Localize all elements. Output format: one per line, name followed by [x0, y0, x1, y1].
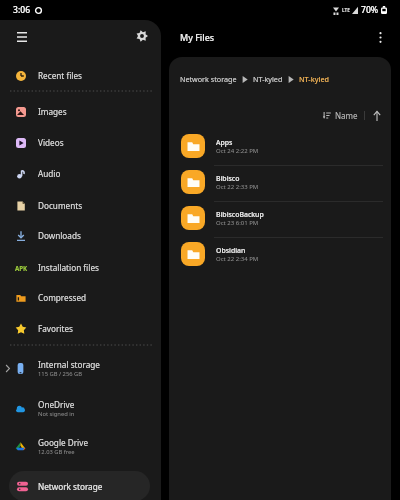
- button[interactable]: Sort ascending: [370, 109, 383, 122]
- button[interactable]: Google Drive: [0, 429, 161, 463]
- staticText: Favorites: [38, 323, 73, 334]
- staticText: 70%: [361, 4, 379, 16]
- staticText: Audio: [38, 168, 61, 179]
- staticText: Network storage: [38, 481, 103, 492]
- staticText: Videos: [38, 137, 64, 148]
- button[interactable]: NT-kyled: [253, 69, 283, 89]
- staticText: Oct 22 2:33 PM: [216, 183, 259, 191]
- staticText: Obsidian: [216, 246, 246, 255]
- button[interactable]: Apps: [169, 128, 391, 164]
- button[interactable]: APK: [0, 252, 161, 283]
- staticText: NT-kyled: [253, 74, 283, 84]
- button[interactable]: Network storage: [9, 471, 150, 500]
- staticText: Installation files: [38, 262, 99, 273]
- staticText: LTE: [342, 7, 350, 13]
- staticText: OneDrive: [38, 399, 75, 410]
- button[interactable]: OneDrive: [0, 391, 161, 425]
- button[interactable]: Bibisco: [169, 164, 391, 200]
- staticText: BibiscoBackup: [216, 210, 264, 219]
- staticText: My Files: [180, 31, 215, 43]
- staticText: Images: [38, 106, 67, 117]
- staticText: 12.03 GB free: [38, 448, 75, 456]
- staticText: 115 GB / 256 GB: [38, 370, 83, 378]
- staticText: 3:06: [13, 4, 31, 16]
- staticText: Not signed in: [38, 410, 75, 418]
- staticText: Internal storage: [38, 359, 100, 370]
- staticText: Google Drive: [38, 437, 89, 448]
- button[interactable]: Internal storage: [0, 351, 161, 385]
- staticText: Compressed: [38, 292, 87, 303]
- staticText: Apps: [216, 138, 233, 147]
- button[interactable]: Videos: [0, 127, 161, 158]
- button[interactable]: NT-kyled: [299, 69, 329, 89]
- button[interactable]: Menu: [11, 26, 33, 48]
- button[interactable]: Documents: [0, 190, 161, 221]
- button[interactable]: Images: [0, 96, 161, 127]
- button[interactable]: More options: [370, 27, 391, 48]
- staticText: APK: [15, 264, 28, 272]
- staticText: Oct 24 2:22 PM: [216, 147, 259, 155]
- button[interactable]: Downloads: [0, 220, 161, 251]
- staticText: Downloads: [38, 230, 81, 241]
- button[interactable]: Compressed: [0, 282, 161, 313]
- staticText: Oct 23 6:01 PM: [216, 219, 259, 227]
- staticText: Bibisco: [216, 174, 240, 183]
- staticText: Name: [335, 110, 358, 121]
- button[interactable]: Favorites: [0, 313, 161, 344]
- staticText: Oct 22 2:34 PM: [216, 255, 259, 263]
- button[interactable]: Recent files: [0, 60, 161, 91]
- button[interactable]: Obsidian: [169, 236, 391, 272]
- button[interactable]: Settings: [131, 25, 153, 47]
- staticText: NT-kyled: [299, 74, 329, 84]
- button[interactable]: Name: [323, 110, 358, 121]
- button[interactable]: BibiscoBackup: [169, 200, 391, 236]
- button[interactable]: Network storage: [180, 69, 237, 89]
- button[interactable]: Audio: [0, 158, 161, 189]
- staticText: Network storage: [180, 74, 237, 84]
- staticText: Documents: [38, 200, 83, 211]
- staticText: Recent files: [38, 70, 82, 81]
